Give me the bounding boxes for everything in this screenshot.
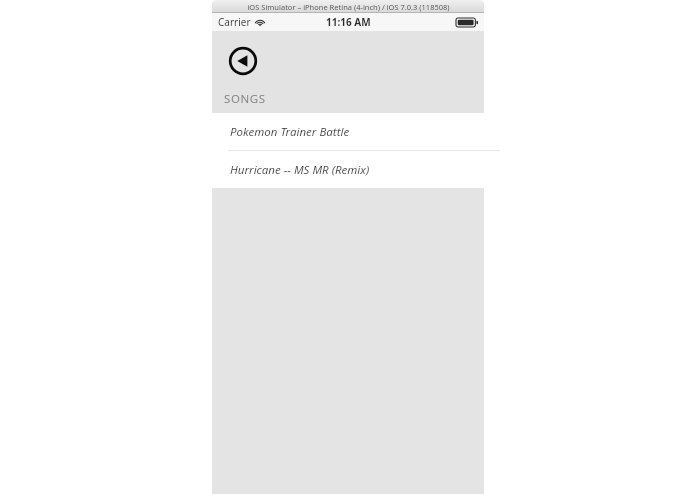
- staticText: Carrier: [218, 15, 251, 29]
- staticText: Hurricane -- MS MR (Remix): [230, 162, 370, 178]
- staticText: iOS Simulator – iPhone Retina (4-inch) /…: [247, 2, 450, 12]
- staticText: 11:16 AM: [326, 15, 371, 29]
- staticText: Pokemon Trainer Battle: [230, 124, 350, 140]
- button[interactable]: Pokemon Trainer Battle: [212, 113, 484, 150]
- staticText: SONGS: [224, 91, 266, 107]
- button[interactable]: Hurricane -- MS MR (Remix): [212, 151, 484, 188]
- button[interactable]: Back: [227, 45, 259, 77]
